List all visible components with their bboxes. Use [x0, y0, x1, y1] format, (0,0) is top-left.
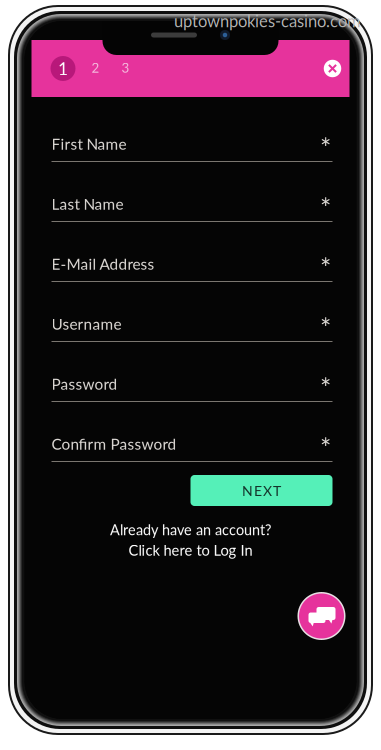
- button[interactable]: N E X T: [190, 475, 332, 506]
- staticText: *: [320, 312, 331, 344]
- button[interactable]: 3: [110, 51, 140, 85]
- staticText: First Name: [51, 135, 126, 153]
- button[interactable]: Open chat: [295, 590, 347, 642]
- staticText: 2: [91, 59, 99, 75]
- button[interactable]: Last Name: [51, 174, 332, 222]
- staticText: 3: [121, 59, 129, 75]
- staticText: Password: [51, 375, 117, 393]
- staticText: Confirm Password: [51, 435, 176, 453]
- staticText: N E X T: [242, 482, 281, 499]
- button[interactable]: 1: [45, 51, 80, 85]
- staticText: Last Name: [51, 195, 123, 213]
- staticText: *: [320, 432, 331, 464]
- staticText: uptownpokies-casino.com: [174, 11, 361, 31]
- staticText: *: [320, 192, 331, 224]
- button[interactable]: Close: [316, 51, 348, 85]
- staticText: *: [320, 372, 331, 404]
- button[interactable]: Username: [51, 294, 332, 342]
- button[interactable]: 2: [80, 51, 110, 85]
- staticText: Click here to Log In: [128, 541, 252, 559]
- staticText: *: [320, 252, 331, 284]
- button[interactable]: First Name: [51, 114, 332, 162]
- button[interactable]: E-Mail Address: [51, 234, 332, 282]
- button[interactable]: Click here to Log In: [128, 541, 252, 559]
- staticText: *: [320, 132, 331, 164]
- button[interactable]: Confirm Password: [51, 414, 332, 462]
- staticText: E-Mail Address: [51, 255, 154, 273]
- staticText: Username: [51, 315, 121, 333]
- staticText: Already have an account?: [110, 521, 271, 538]
- button[interactable]: Password: [51, 354, 332, 402]
- staticText: 1: [58, 58, 68, 79]
